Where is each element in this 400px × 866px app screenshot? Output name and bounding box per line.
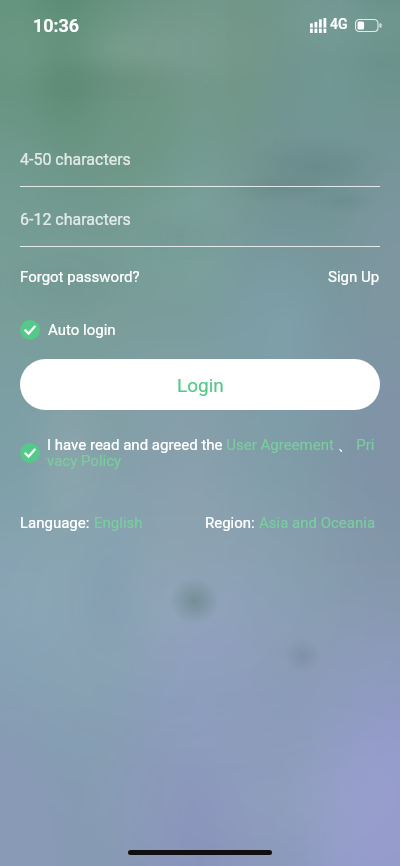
button[interactable] bbox=[20, 443, 40, 463]
staticText: Language: bbox=[20, 514, 94, 532]
staticText: Auto login bbox=[48, 321, 116, 339]
button[interactable]: Login bbox=[20, 359, 380, 410]
staticText: English bbox=[94, 514, 143, 532]
staticText: 6-12 characters bbox=[20, 210, 131, 229]
button[interactable]: Sign Up bbox=[328, 268, 380, 286]
staticText: Asia and Oceania bbox=[259, 514, 376, 532]
staticText: 10:36 bbox=[33, 15, 80, 36]
staticText: vacy Policy bbox=[47, 452, 122, 470]
button[interactable]: Auto login bbox=[20, 320, 116, 340]
staticText: Region: bbox=[205, 514, 259, 532]
button[interactable]: Language: bbox=[20, 514, 143, 532]
staticText: 4-50 characters bbox=[20, 150, 131, 169]
button[interactable]: Region: bbox=[205, 514, 376, 532]
staticText: I have read and agreed the User Agreemen… bbox=[47, 436, 375, 455]
staticText: Sign Up bbox=[328, 268, 380, 286]
staticText: Login bbox=[177, 374, 224, 396]
button[interactable]: Forgot password? bbox=[20, 268, 140, 286]
staticText: Forgot password? bbox=[20, 268, 140, 286]
staticText: 4G bbox=[330, 16, 348, 32]
